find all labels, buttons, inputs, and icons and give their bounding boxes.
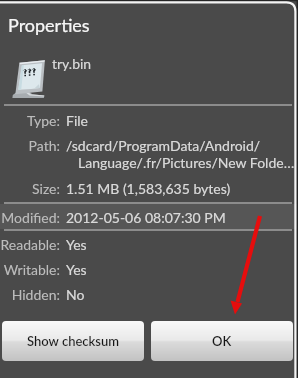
button[interactable]: Show checksum bbox=[2, 321, 144, 361]
button[interactable]: Size: bbox=[0, 175, 298, 202]
button[interactable]: Modified: bbox=[0, 204, 298, 229]
button[interactable]: Path: bbox=[0, 133, 298, 175]
staticText: Yes bbox=[66, 236, 87, 253]
staticText: OK bbox=[212, 333, 232, 349]
staticText: Hidden: bbox=[0, 286, 60, 303]
staticText: Language/.fr/Pictures/New Folde… bbox=[78, 154, 295, 171]
button[interactable]: Type: bbox=[0, 106, 298, 133]
button[interactable]: Readable: bbox=[0, 231, 298, 257]
button[interactable]: OK bbox=[151, 321, 293, 361]
staticText: Size: bbox=[0, 180, 60, 197]
staticText: Yes bbox=[66, 261, 87, 278]
staticText: 2012-05-06 08:07:30 PM bbox=[66, 209, 226, 226]
staticText: Path: bbox=[0, 137, 60, 154]
staticText: Type: bbox=[0, 112, 60, 129]
staticText: File bbox=[66, 112, 88, 129]
button[interactable]: Hidden: bbox=[0, 282, 298, 307]
staticText: Modified: bbox=[0, 209, 60, 226]
staticText: Readable: bbox=[0, 236, 60, 253]
staticText: No bbox=[66, 286, 85, 303]
staticText: Properties bbox=[8, 14, 90, 36]
staticText: Writable: bbox=[0, 261, 60, 278]
button[interactable]: Writable: bbox=[0, 257, 298, 282]
staticText: /sdcard/ProgramData/Android/ bbox=[66, 137, 261, 154]
staticText: try.bin bbox=[52, 55, 92, 72]
staticText: 1.51 MB (1,583,635 bytes) bbox=[66, 180, 231, 197]
staticText: Show checksum bbox=[27, 333, 120, 349]
